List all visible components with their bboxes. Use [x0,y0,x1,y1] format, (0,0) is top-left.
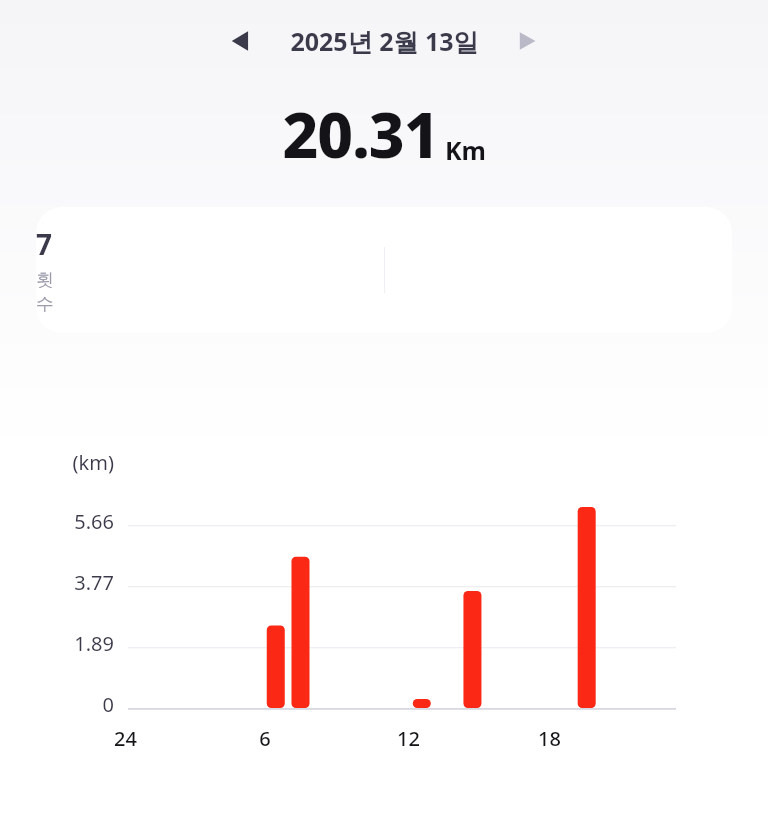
staticText: 20.31 [282,92,439,176]
staticText: 6 [259,725,271,752]
staticText: 24 [114,725,137,752]
staticText: 5.66 [74,508,114,535]
staticText: 1.89 [74,630,114,657]
staticText: Km [445,133,486,167]
button[interactable]: Daily distance chart [0,470,768,720]
button[interactable]: Previous day [222,22,260,60]
button[interactable]: 7 [36,207,732,333]
staticText: 3.77 [74,569,114,596]
staticText: 0 [102,691,114,718]
button[interactable]: 2025년 2월 13일 [268,18,500,64]
staticText: 2025년 2월 13일 [290,24,479,58]
button[interactable]: Next day [508,22,546,60]
staticText: 12 [397,725,420,752]
staticText: (km) [72,449,114,476]
staticText: 18 [538,725,561,752]
